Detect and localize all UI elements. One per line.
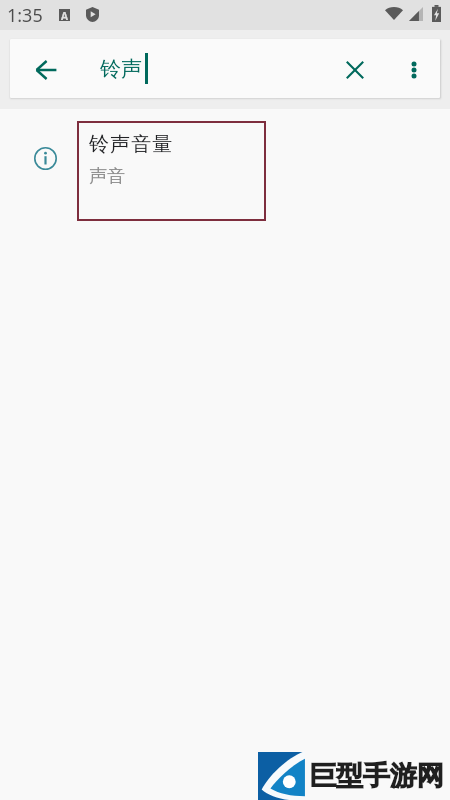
staticText: 声音 [89, 165, 125, 188]
button[interactable]: Back [10, 39, 100, 98]
button[interactable]: 铃声 [100, 39, 342, 98]
button[interactable]: More options [390, 39, 437, 98]
staticText: 铃声音量 [89, 132, 174, 157]
staticText: 巨型手游网 [309, 759, 444, 793]
staticText: A [61, 9, 68, 21]
button[interactable]: Clear [342, 39, 390, 98]
staticText: 1:35 [7, 3, 43, 28]
staticText: 铃声 [100, 56, 142, 82]
button[interactable]: 铃声音量 [0, 109, 450, 221]
